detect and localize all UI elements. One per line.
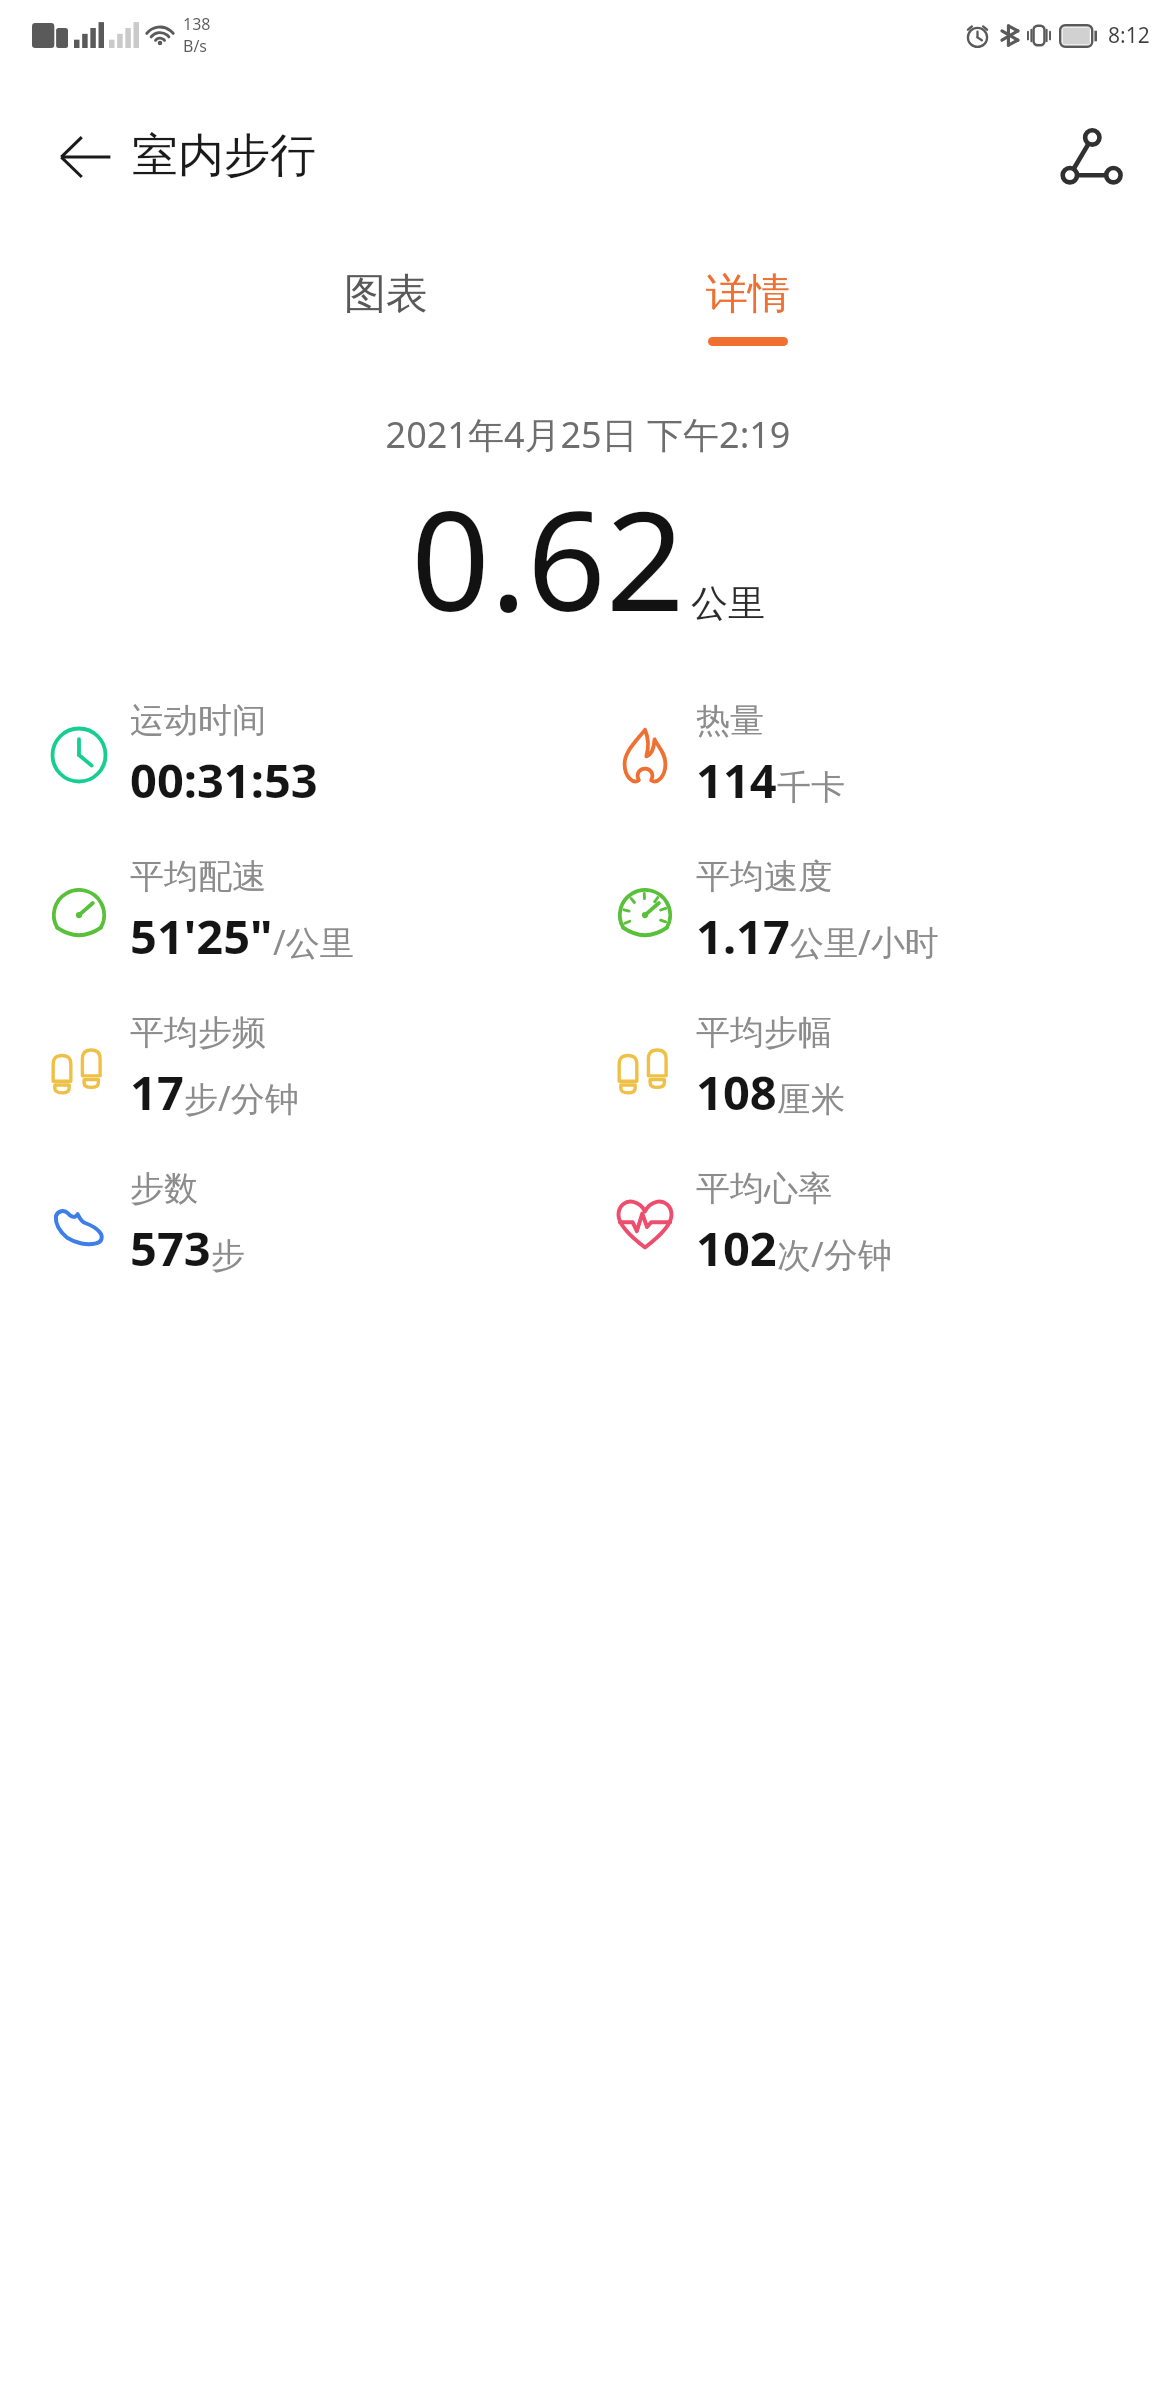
staticText: 平均步幅	[696, 1011, 832, 1054]
staticText: 步数	[130, 1167, 198, 1210]
button[interactable]: 平均心率	[588, 1145, 1176, 1301]
button[interactable]: 图表	[0, 242, 588, 366]
button[interactable]: 详情	[588, 242, 1176, 366]
button[interactable]: 平均步幅	[588, 989, 1176, 1145]
staticText: 步/分钟	[184, 1075, 299, 1121]
staticText: 平均心率	[696, 1167, 832, 1210]
staticText: 公里/小时	[790, 919, 939, 965]
staticText: 573	[130, 1216, 211, 1280]
staticText: 114	[696, 748, 777, 812]
staticText: 次/分钟	[777, 1231, 892, 1277]
staticText: 1.17	[696, 904, 790, 968]
staticText: 详情	[706, 268, 790, 321]
staticText: 平均配速	[130, 855, 266, 898]
staticText: 厘米	[777, 1078, 845, 1121]
staticText: 17	[130, 1060, 184, 1124]
staticText: 51'25"	[130, 904, 273, 968]
staticText: 图表	[344, 268, 428, 321]
staticText: 102	[696, 1216, 777, 1280]
staticText: 108	[696, 1060, 777, 1124]
staticText: 0.62	[411, 463, 685, 651]
button[interactable]: Back	[46, 117, 124, 195]
staticText: 千卡	[777, 766, 845, 809]
staticText: 平均步频	[130, 1011, 266, 1054]
staticText: 平均速度	[696, 855, 832, 898]
staticText: 步	[211, 1234, 245, 1277]
button[interactable]: 平均步频	[0, 989, 588, 1145]
button[interactable]: Share route	[1046, 111, 1136, 201]
staticText: 138	[183, 13, 211, 35]
staticText: 公里	[691, 580, 765, 627]
staticText: 室内步行	[132, 127, 316, 185]
staticText: 2021年4月25日 下午2:19	[0, 410, 1176, 459]
staticText: /公里	[273, 919, 354, 965]
button[interactable]: 平均速度	[588, 833, 1176, 989]
button[interactable]: 运动时间	[0, 677, 588, 833]
staticText: 8:12	[1108, 21, 1150, 50]
staticText: 00:31:53	[130, 748, 318, 812]
button[interactable]: 平均配速	[0, 833, 588, 989]
staticText: 热量	[696, 699, 764, 742]
button[interactable]: 热量	[588, 677, 1176, 833]
staticText: 运动时间	[130, 699, 266, 742]
staticText: B/s	[183, 35, 208, 57]
button[interactable]: 步数	[0, 1145, 588, 1301]
